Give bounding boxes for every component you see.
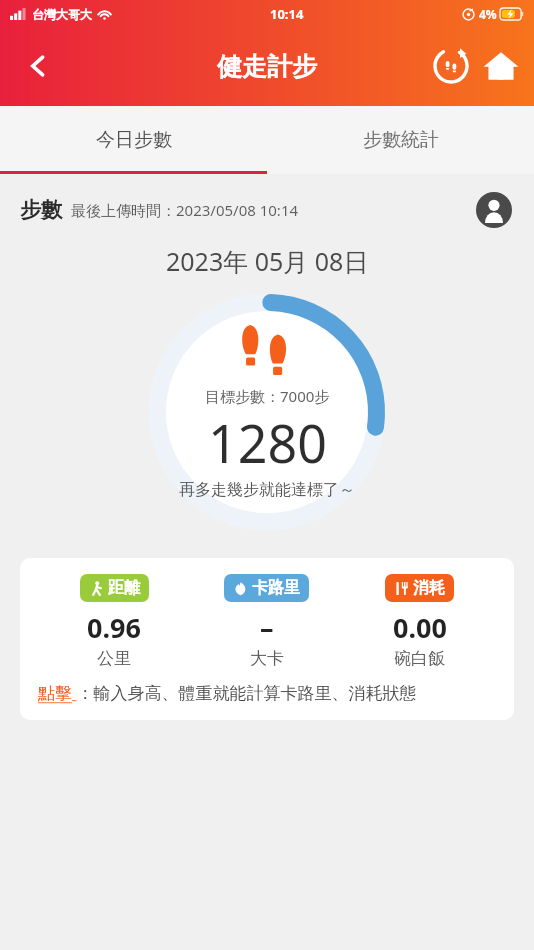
staticText: 消耗 <box>413 578 445 598</box>
staticText: 步數統計 <box>363 128 439 152</box>
staticText: 2023年 05月 08日 <box>166 244 369 278</box>
button[interactable]: 消耗 <box>343 574 496 669</box>
staticText: 卡路里 <box>252 578 300 598</box>
staticText: 10:14 <box>270 5 304 23</box>
button[interactable]: 距離 <box>38 574 190 669</box>
staticText: 公里 <box>97 648 131 669</box>
staticText: 目標步數：7000步 <box>205 386 330 406</box>
staticText: 再多走幾步就能達標了～ <box>179 480 355 500</box>
staticText: 步數 <box>20 197 62 223</box>
staticText: 點擊 ：輸入身高、體重就能計算卡路里、消耗狀態 <box>38 681 417 704</box>
button[interactable]: 步數統計 <box>267 106 534 174</box>
staticText: 4% <box>479 6 497 22</box>
button[interactable]: 今日步數 <box>0 106 267 174</box>
staticText: – <box>260 609 274 646</box>
button[interactable]: Home <box>476 41 526 91</box>
button[interactable]: 點擊 ：輸入身高、體重就能計算卡路里、消耗狀態 <box>38 681 496 704</box>
button[interactable]: 卡路里 <box>190 574 343 669</box>
staticText: 距離 <box>108 578 140 598</box>
staticText: 健走計步 <box>217 51 317 82</box>
staticText: 1280 <box>208 407 327 478</box>
button[interactable]: Profile <box>474 190 514 230</box>
staticText: 0.96 <box>87 609 141 646</box>
staticText: 最後上傳時間：2023/05/08 10:14 <box>71 200 299 220</box>
staticText: 今日步數 <box>96 128 172 152</box>
button[interactable]: Sync steps <box>426 41 476 91</box>
staticText: 大卡 <box>250 648 284 669</box>
staticText: 台灣大哥大 <box>32 7 92 22</box>
button[interactable]: Back <box>12 40 64 92</box>
staticText: 0.00 <box>393 609 447 646</box>
staticText: 碗白飯 <box>394 648 445 669</box>
